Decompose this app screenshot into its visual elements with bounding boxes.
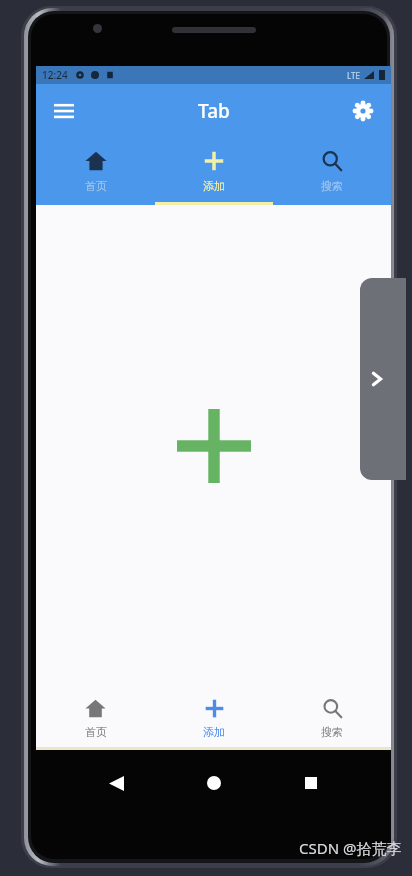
button[interactable]: 添加 (155, 686, 273, 750)
button[interactable]: Back (99, 766, 133, 800)
button[interactable]: Home (197, 766, 231, 800)
button[interactable]: Settings (343, 91, 383, 131)
staticText: LTE (347, 70, 360, 81)
staticText: 首页 (85, 179, 107, 193)
button[interactable]: 首页 (36, 137, 155, 205)
button[interactable]: 搜索 (273, 686, 391, 750)
staticText: 添加 (203, 179, 225, 193)
button[interactable]: Menu (44, 91, 84, 131)
button[interactable]: Recents (294, 766, 328, 800)
staticText: 首页 (85, 725, 107, 739)
button[interactable]: 首页 (36, 686, 155, 750)
staticText: CSDN @拾荒李 (299, 838, 402, 858)
staticText: 12:24 (42, 68, 68, 82)
button[interactable]: 添加 (155, 137, 273, 205)
button[interactable]: 搜索 (273, 137, 391, 205)
button[interactable]: Expand panel (360, 278, 406, 480)
staticText: Tab (198, 98, 230, 124)
staticText: 搜索 (321, 725, 343, 739)
staticText: 搜索 (321, 179, 343, 193)
staticText: 添加 (203, 725, 225, 739)
